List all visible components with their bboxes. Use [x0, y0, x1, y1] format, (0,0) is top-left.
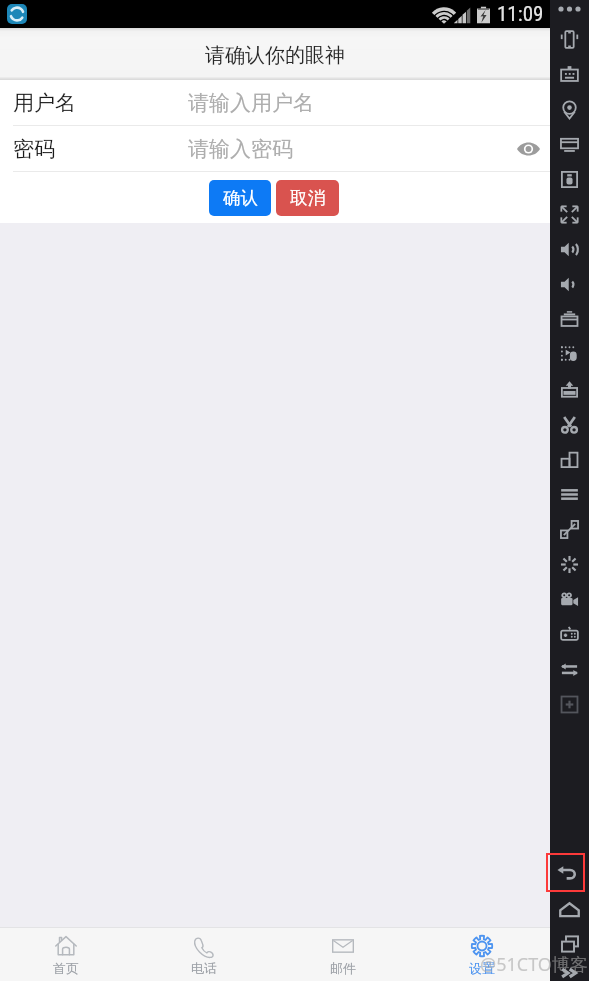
button[interactable]: Gamepad	[551, 617, 588, 651]
staticText: 11:09	[497, 2, 544, 27]
staticText: 电话	[191, 960, 217, 976]
button[interactable]: Menu	[551, 477, 588, 511]
staticText: 邮件	[330, 960, 356, 976]
button[interactable]: Resize	[551, 512, 588, 546]
button[interactable]: Install APK	[551, 372, 588, 406]
button[interactable]: 用户名	[0, 80, 550, 125]
staticText: 确认	[223, 187, 258, 209]
button[interactable]: Nox notification	[7, 4, 27, 24]
button[interactable]: Sync	[551, 652, 588, 686]
button[interactable]: Location	[551, 92, 588, 126]
staticText: 密码	[13, 136, 55, 162]
button[interactable]: Volume up	[551, 232, 588, 266]
button[interactable]: Cut	[551, 407, 588, 441]
staticText: 请输入密码	[188, 136, 293, 162]
staticText: @51CTO博客	[480, 952, 588, 977]
staticText: 请输入用户名	[188, 90, 314, 116]
staticText: 用户名	[13, 90, 76, 116]
button[interactable]: Record	[551, 302, 588, 336]
button[interactable]: Video record	[551, 582, 588, 616]
button[interactable]: Recent apps	[551, 927, 588, 961]
button[interactable]: Rotate	[551, 22, 588, 56]
button[interactable]: Add	[551, 687, 588, 721]
button[interactable]: 确认	[209, 180, 271, 216]
button[interactable]: 取消	[276, 180, 339, 216]
button[interactable]: Storage	[551, 162, 588, 196]
button[interactable]: 密码	[0, 126, 550, 171]
button[interactable]: 邮件	[274, 928, 412, 981]
button[interactable]: 设置	[413, 928, 551, 981]
button[interactable]: Shake	[551, 547, 588, 581]
button[interactable]: 首页	[0, 928, 135, 981]
staticText: 请确认你的眼神	[205, 43, 345, 68]
button[interactable]: Keyboard mapping	[551, 57, 588, 91]
button[interactable]: Volume down	[551, 267, 588, 301]
button[interactable]: Macro	[551, 337, 588, 371]
button[interactable]: Performance	[551, 442, 588, 476]
button[interactable]: Fullscreen	[551, 197, 588, 231]
button[interactable]: Back	[546, 853, 585, 892]
button[interactable]: Show password	[515, 136, 541, 162]
staticText: 取消	[290, 187, 325, 209]
button[interactable]: Home	[551, 893, 588, 927]
staticText: 设置	[469, 960, 495, 976]
button[interactable]: 电话	[135, 928, 273, 981]
staticText: 首页	[53, 960, 79, 976]
button[interactable]: Screenshot	[551, 127, 588, 161]
